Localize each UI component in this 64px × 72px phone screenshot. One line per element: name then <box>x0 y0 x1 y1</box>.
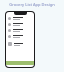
button[interactable] <box>6 15 34 21</box>
button[interactable] <box>8 40 32 48</box>
staticText: Grocery List App Design <box>0 2 64 7</box>
button[interactable] <box>6 21 34 27</box>
button[interactable] <box>6 33 34 39</box>
button[interactable] <box>6 27 34 33</box>
